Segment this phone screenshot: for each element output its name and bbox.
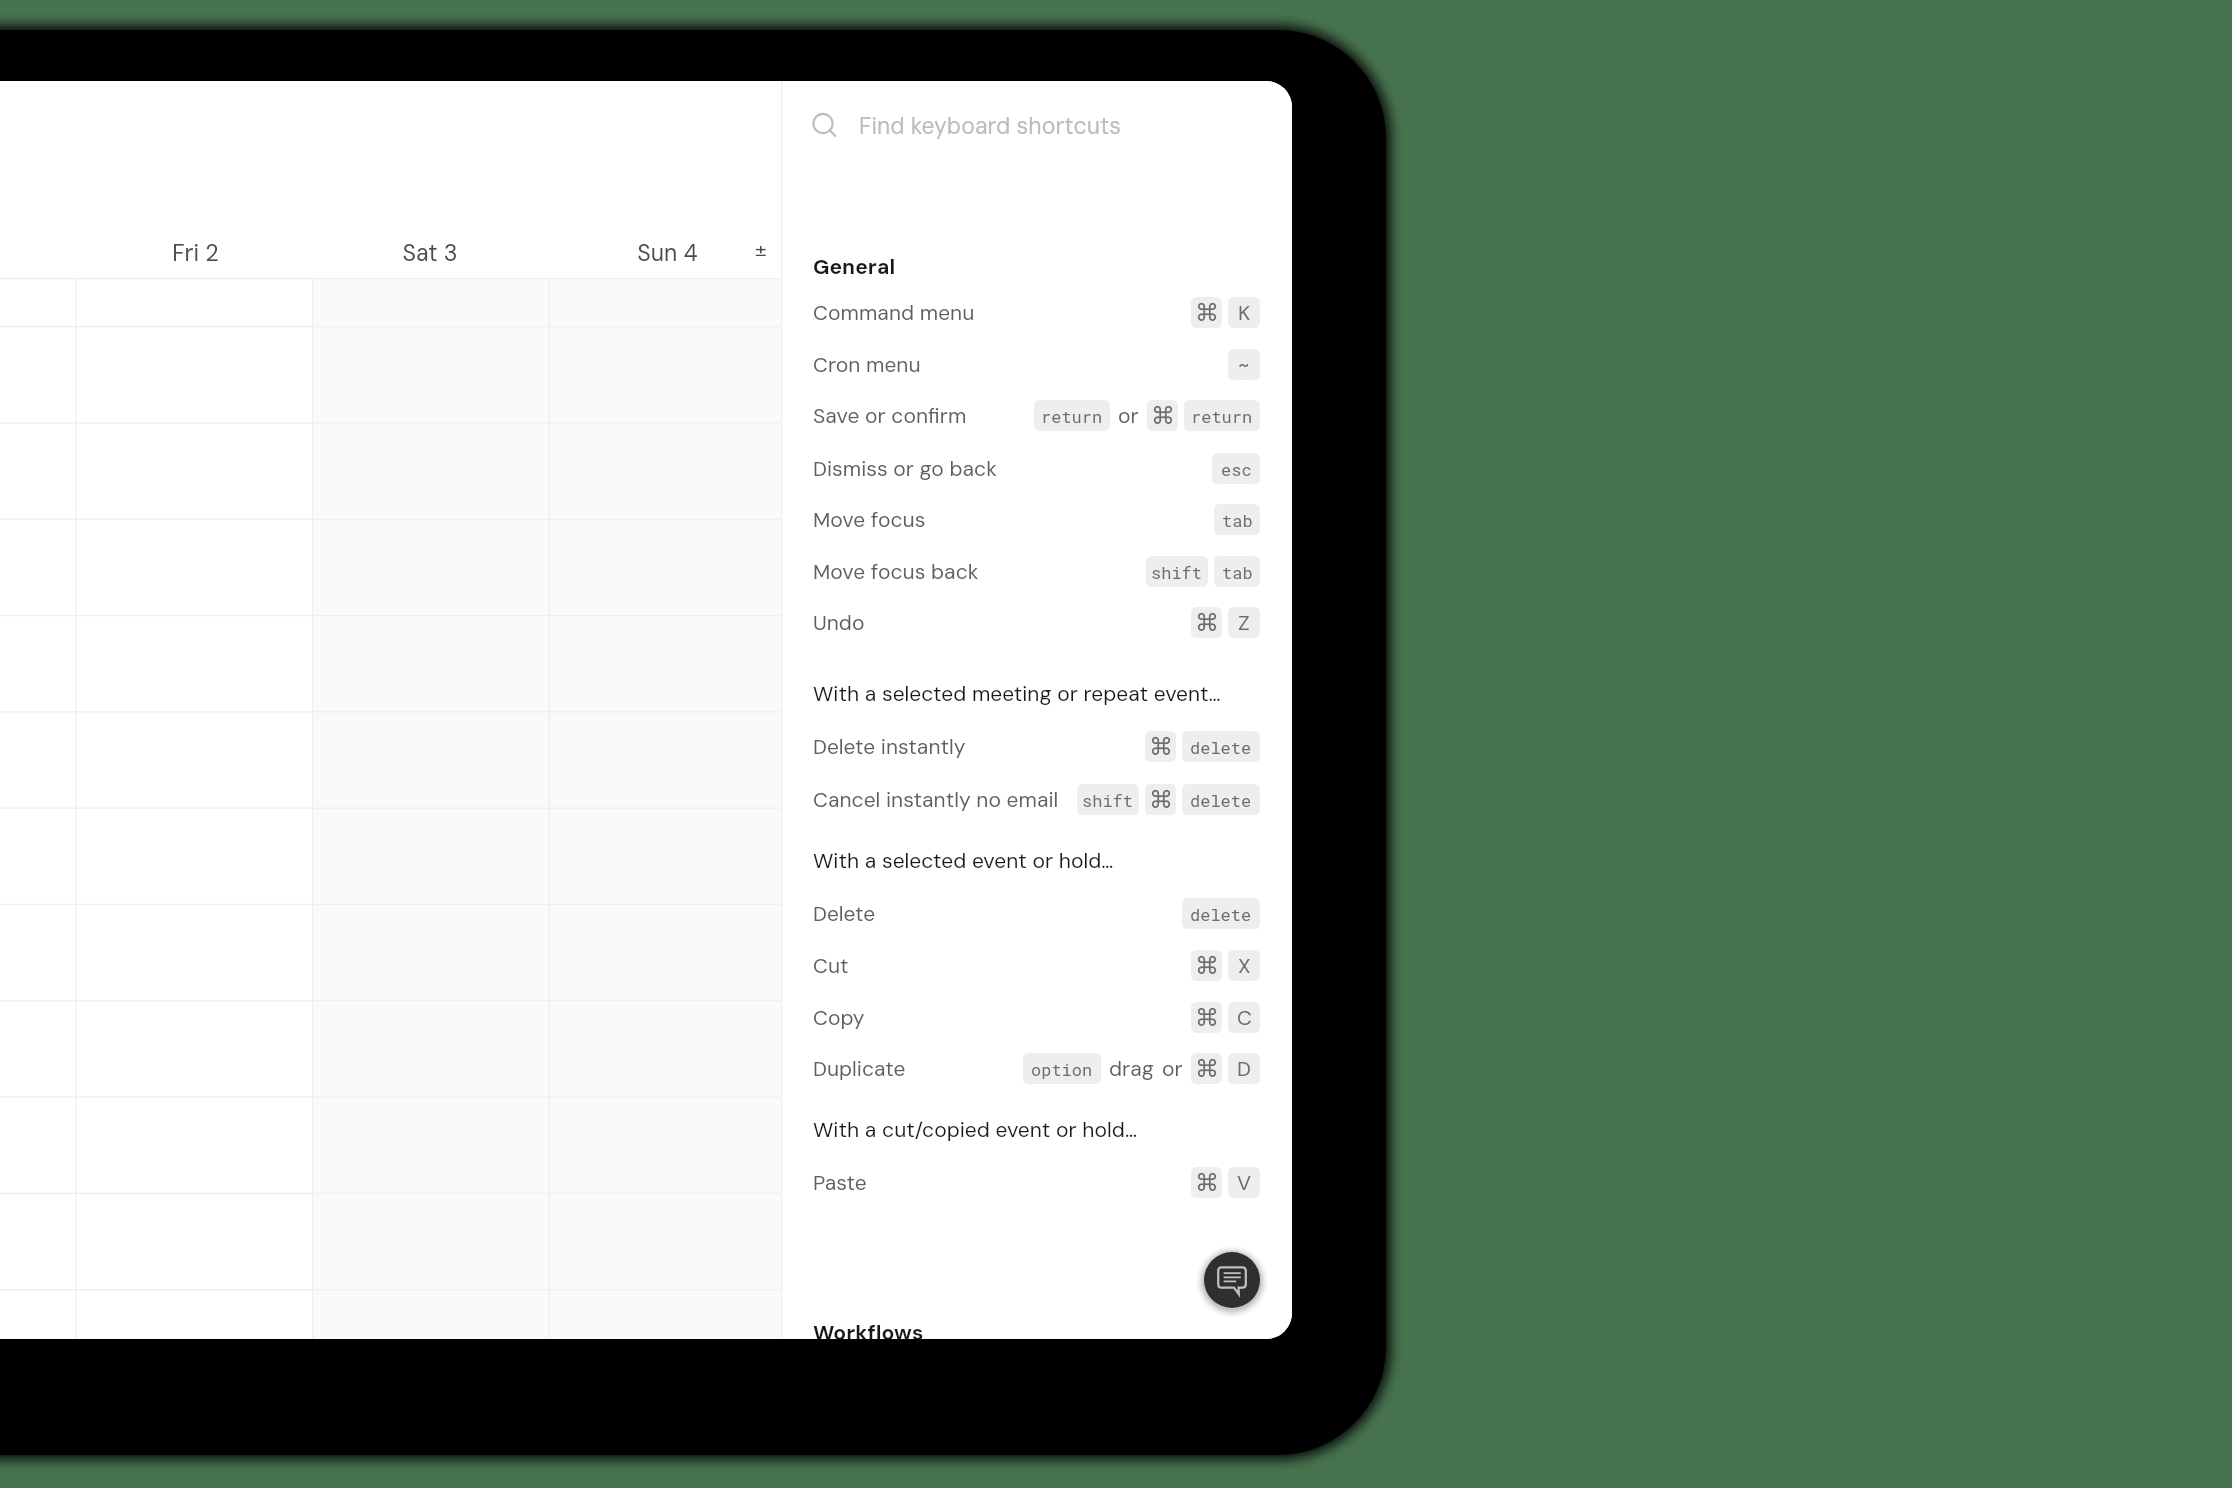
staticText: ±	[755, 235, 767, 262]
staticText: Find keyboard shortcuts	[859, 111, 1121, 141]
staticText: Cron menu	[813, 351, 921, 378]
staticText: Undo	[813, 609, 865, 636]
button[interactable]: Send feedback	[1204, 1252, 1260, 1308]
button[interactable]: Undo	[813, 601, 1260, 643]
button[interactable]: Dismiss or go back	[813, 447, 1260, 489]
button[interactable]: Cut	[813, 944, 1260, 986]
button[interactable]: Paste	[813, 1161, 1260, 1203]
staticText: Copy	[813, 1004, 865, 1031]
button[interactable]: Copy	[813, 996, 1260, 1038]
button[interactable]: Sun 4	[597, 236, 737, 270]
button[interactable]: Find keyboard shortcuts	[812, 102, 1242, 150]
staticText: esc	[1221, 458, 1252, 480]
staticText: shift	[1082, 789, 1134, 811]
staticText: Dismiss or go back	[813, 455, 997, 482]
staticText: Workflows	[813, 1319, 924, 1339]
button[interactable]: Save or confirm	[813, 394, 1260, 436]
staticText: return	[1041, 405, 1103, 427]
staticText: Fri 2	[172, 238, 219, 268]
button[interactable]: Command menu	[813, 291, 1260, 333]
staticText: Delete instantly	[813, 733, 966, 760]
staticText: With a selected event or hold…	[813, 847, 1114, 874]
staticText: ⌘	[1151, 402, 1175, 430]
button[interactable]: Duplicate	[813, 1047, 1260, 1089]
button[interactable]: Cancel instantly no email	[813, 778, 1260, 820]
staticText: ⌘	[1195, 299, 1219, 327]
staticText: delete	[1190, 789, 1252, 811]
staticText: ⌘	[1149, 786, 1173, 814]
staticText: option	[1031, 1058, 1093, 1080]
staticText: Move focus	[813, 506, 926, 533]
staticText: delete	[1190, 903, 1252, 925]
staticText: ⌘	[1195, 1169, 1219, 1197]
staticText: return	[1191, 405, 1253, 427]
staticText: Sun 4	[637, 238, 698, 268]
button[interactable]: Move focus	[813, 498, 1260, 540]
staticText: ⌘	[1195, 952, 1219, 980]
button[interactable]: Fri 2	[125, 236, 265, 270]
staticText: tab	[1222, 509, 1253, 531]
staticText: Save or confirm	[813, 402, 967, 429]
staticText: Duplicate	[813, 1055, 906, 1082]
staticText: tab	[1222, 561, 1253, 583]
staticText: ⌘	[1195, 609, 1219, 637]
staticText: ⌘	[1149, 733, 1173, 761]
button[interactable]: Toggle day density	[747, 234, 775, 262]
button[interactable]: Delete	[813, 892, 1260, 934]
staticText: shift	[1151, 561, 1203, 583]
staticText: Cut	[813, 952, 849, 979]
staticText: C	[1237, 1004, 1252, 1031]
staticText: ⌘	[1195, 1055, 1219, 1083]
staticText: General	[813, 253, 896, 280]
staticText: ~	[1238, 351, 1250, 378]
button[interactable]: Delete instantly	[813, 725, 1260, 767]
staticText: Sat 3	[402, 238, 458, 268]
staticText: drag	[1109, 1055, 1154, 1082]
button[interactable]: Move focus back	[813, 550, 1260, 592]
staticText: V	[1237, 1169, 1252, 1196]
staticText: Command menu	[813, 299, 975, 326]
staticText: K	[1238, 299, 1251, 326]
staticText: or	[1162, 1055, 1183, 1082]
staticText: With a cut/copied event or hold…	[813, 1116, 1138, 1143]
button[interactable]: Cron menu	[813, 343, 1260, 385]
staticText: Delete	[813, 900, 876, 927]
staticText: Move focus back	[813, 558, 979, 585]
staticText: With a selected meeting or repeat event…	[813, 680, 1221, 707]
staticText: Cancel instantly no email	[813, 786, 1059, 813]
staticText: Paste	[813, 1169, 867, 1196]
staticText: Z	[1238, 609, 1250, 636]
staticText: or	[1118, 402, 1139, 429]
staticText: D	[1237, 1055, 1251, 1082]
staticText: X	[1238, 952, 1251, 979]
button[interactable]: Sat 3	[360, 236, 500, 270]
staticText: ⌘	[1195, 1004, 1219, 1032]
staticText: delete	[1190, 736, 1252, 758]
